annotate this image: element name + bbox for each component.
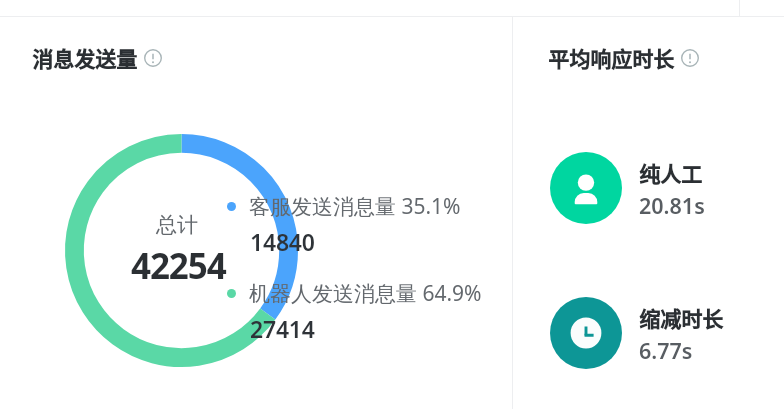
staticText: 消息发送量 — [32, 43, 137, 73]
staticText: 平均响应时长 — [548, 43, 674, 73]
staticText: 27414 — [250, 313, 315, 344]
other: Info — [144, 49, 162, 67]
staticText: 机器人发送消息量 64.9% — [249, 279, 482, 308]
staticText: 总计 — [156, 212, 198, 238]
staticText: 14840 — [250, 226, 315, 257]
button[interactable]: 消息发送量 — [32, 43, 155, 73]
staticText: 20.81s — [639, 191, 705, 220]
staticText: 6.77s — [639, 336, 693, 365]
staticText: 客服发送消息量 35.1% — [249, 192, 461, 221]
other: Reduced duration — [550, 297, 622, 369]
staticText: 纯人工 — [639, 158, 702, 188]
button[interactable]: Pure human agents — [550, 152, 725, 224]
staticText: 缩减时长 — [639, 303, 723, 333]
staticText: 42254 — [131, 242, 226, 290]
button[interactable]: 平均响应时长 — [548, 43, 692, 73]
button[interactable]: Reduced duration — [550, 297, 745, 369]
other: Info — [681, 49, 699, 67]
other: Pure human agents — [550, 152, 622, 224]
